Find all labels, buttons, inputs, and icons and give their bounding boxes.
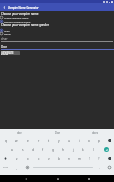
button[interactable]: Emoji (104, 163, 114, 172)
staticText: l (93, 148, 94, 152)
button[interactable]: GENERATE NAME (1, 51, 20, 55)
button[interactable]: ! (84, 154, 94, 163)
staticText: w (15, 139, 18, 143)
button[interactable]: s (17, 145, 28, 154)
staticText: i (79, 139, 80, 143)
button[interactable]: k (78, 145, 88, 154)
staticText: y (58, 139, 60, 143)
button[interactable]: q (0, 136, 11, 145)
staticText: , (16, 166, 17, 170)
staticText: ! (89, 157, 90, 161)
staticText: Classic vampire name (4, 16, 29, 19)
staticText: e (27, 139, 29, 143)
staticText: Doe (1, 45, 7, 49)
button[interactable]: t (44, 136, 54, 145)
button[interactable]: v (44, 154, 54, 163)
button[interactable]: Recents (85, 175, 92, 182)
button[interactable]: , (11, 163, 22, 172)
staticText: a (11, 148, 13, 152)
button[interactable]: l (88, 145, 98, 154)
staticText: b (58, 157, 60, 161)
button[interactable]: Navigate up (0, 3, 8, 11)
staticText: c (38, 157, 40, 161)
staticText: h (62, 148, 64, 152)
staticText: Choose your vampire name gender (1, 23, 49, 27)
staticText: q (5, 139, 7, 143)
button[interactable]: e (22, 136, 33, 145)
button[interactable]: ?123 (0, 163, 11, 172)
staticText: m (78, 157, 81, 161)
button[interactable]: r (33, 136, 44, 145)
button[interactable]: o (84, 136, 94, 145)
button[interactable]: y (54, 136, 64, 145)
staticText: ? (98, 157, 100, 161)
button[interactable]: Enter (98, 145, 114, 154)
staticText: f (42, 148, 44, 152)
button[interactable]: Male (0, 29, 114, 32)
button[interactable]: f (38, 145, 48, 154)
button[interactable]: Doe (38, 129, 76, 136)
staticText: v (48, 157, 50, 161)
staticText: t (48, 139, 50, 143)
button[interactable]: Back (22, 175, 29, 182)
staticText: o (88, 139, 90, 143)
staticText: j (73, 148, 74, 152)
staticText: does (92, 131, 98, 135)
staticText: x (27, 157, 29, 161)
button[interactable]: Settings (22, 163, 32, 172)
button[interactable]: g (48, 145, 58, 154)
button[interactable]: Backspace (104, 136, 114, 145)
button[interactable]: m (74, 154, 84, 163)
button[interactable]: Random vampire name (0, 20, 114, 23)
staticText: r (38, 139, 40, 143)
staticText: p (98, 139, 100, 143)
staticText: . (99, 166, 100, 170)
staticText: Male (4, 29, 10, 32)
button[interactable]: i (74, 136, 84, 145)
staticText: Doe (55, 131, 60, 135)
staticText: k (82, 148, 84, 152)
button[interactable]: h (58, 145, 68, 154)
staticText: Vampire Name Generator (8, 6, 39, 9)
staticText: u (68, 139, 70, 143)
staticText: char (1, 37, 8, 41)
staticText: Femal (4, 32, 11, 35)
button[interactable]: d (28, 145, 38, 154)
button[interactable]: Shift (0, 154, 11, 163)
button[interactable]: Space (32, 163, 94, 172)
staticText: s (22, 148, 24, 152)
staticText: d (32, 148, 34, 152)
button[interactable]: x (22, 154, 33, 163)
button[interactable]: u (64, 136, 74, 145)
button[interactable]: j (68, 145, 78, 154)
staticText: Random vampire name (4, 20, 31, 23)
button[interactable]: Femal (0, 32, 114, 35)
button[interactable]: Delete (104, 154, 114, 163)
button[interactable]: c (33, 154, 44, 163)
button[interactable]: ? (94, 154, 104, 163)
button[interactable]: w (11, 136, 22, 145)
staticText: GENERATE NAME (1, 51, 20, 55)
button[interactable]: does (76, 129, 114, 136)
staticText: z (16, 157, 18, 161)
staticText: g (52, 148, 54, 152)
button[interactable]: p (94, 136, 104, 145)
button[interactable]: a (6, 145, 17, 154)
staticText: n (68, 157, 70, 161)
button[interactable]: n (64, 154, 74, 163)
button[interactable]: b (54, 154, 64, 163)
button[interactable]: Classic vampire name (0, 16, 114, 19)
staticText: doe (17, 131, 22, 135)
staticText: Choose your vampire name (1, 12, 39, 16)
button[interactable]: Home (54, 175, 61, 182)
button[interactable]: z (11, 154, 22, 163)
button[interactable]: doe (0, 129, 38, 136)
staticText: ?123 (3, 166, 8, 169)
